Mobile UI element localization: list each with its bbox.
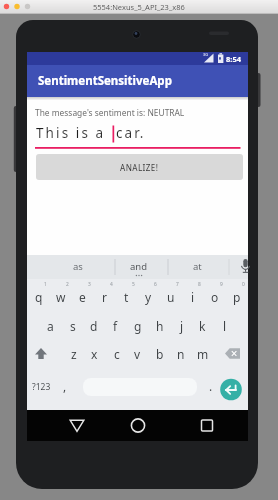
button[interactable]: p [226,285,247,309]
button[interactable]: m [192,342,213,366]
staticText: ?123 [32,381,51,393]
staticText: 3G [203,52,209,57]
button[interactable]: a [40,314,61,338]
button[interactable]: q [28,285,49,309]
staticText: 5554:Nexus_5_API_23_x86 [93,2,185,12]
button[interactable]: s [62,314,83,338]
button[interactable]: x [84,342,105,366]
button[interactable]: v [127,342,148,366]
staticText: u [167,289,175,305]
staticText: o [211,289,219,305]
button[interactable]: d [83,314,104,338]
staticText: , [63,378,67,394]
button[interactable]: u [160,285,181,309]
button[interactable]: as [58,259,98,273]
staticText: 7 [176,281,179,288]
button[interactable]: l [214,314,235,338]
staticText: 6 [154,281,157,288]
button[interactable]: t [116,285,137,309]
staticText: q [35,289,43,305]
staticText: The message's sentiment is: NEUTRAL [35,107,185,118]
button[interactable]: c [106,342,127,366]
staticText: y [145,289,152,305]
staticText: s [70,318,76,334]
button[interactable] [124,412,152,439]
staticText: x [91,346,98,362]
staticText: t [124,289,129,305]
staticText: 8:54 [226,54,241,64]
staticText: 0 [242,281,245,288]
button[interactable] [193,412,221,439]
staticText: l [223,318,227,334]
staticText: 2 [66,281,69,288]
staticText: 1 [44,281,47,288]
staticText: m [197,346,209,362]
staticText: v [134,346,141,362]
button[interactable]: o [204,285,225,309]
button[interactable]: . [203,375,219,397]
staticText: 5 [132,281,135,288]
button[interactable]: r [94,285,115,309]
button[interactable]: k [192,314,213,338]
staticText: z [71,346,77,362]
button[interactable]: g [127,314,148,338]
staticText: 9 [220,281,223,288]
button[interactable] [63,412,91,439]
staticText: g [134,318,142,334]
button[interactable]: at [177,259,217,273]
staticText: and [130,260,148,273]
button[interactable]: f [105,314,126,338]
staticText: d [90,318,98,334]
staticText: e [79,289,86,305]
staticText: n [177,346,185,362]
staticText: c [114,346,120,362]
staticText: p [233,289,241,305]
staticText: i [191,289,195,305]
button[interactable]: and [119,259,159,273]
button[interactable]: h [149,314,170,338]
button[interactable]: y [138,285,159,309]
staticText: This is a [36,124,106,142]
staticText: ANALIZE! [120,162,159,173]
staticText: as [73,260,83,273]
button[interactable]: z [63,342,84,366]
staticText: SentimentSensitiveApp [38,73,172,89]
staticText: b [156,346,164,362]
staticText: w [56,289,66,305]
staticText: r [102,289,107,305]
button[interactable]: ?123 [27,376,55,398]
staticText: 4 [110,281,113,288]
staticText: 3 [88,281,91,288]
staticText: j [180,318,184,334]
button[interactable]: i [182,285,203,309]
button[interactable]: e [72,285,93,309]
staticText: at [193,260,202,273]
button[interactable]: b [149,342,170,366]
staticText: . [209,378,213,394]
button[interactable]: , [57,375,73,397]
staticText: car. [116,124,146,142]
staticText: a [47,318,54,334]
button[interactable]: ANALIZE! [36,154,243,180]
staticText: h [156,318,164,334]
button[interactable]: n [170,342,191,366]
button[interactable]: w [50,285,71,309]
staticText: k [199,318,206,334]
button[interactable]: j [171,314,192,338]
staticText: f [113,318,118,334]
staticText: 8 [198,281,201,288]
